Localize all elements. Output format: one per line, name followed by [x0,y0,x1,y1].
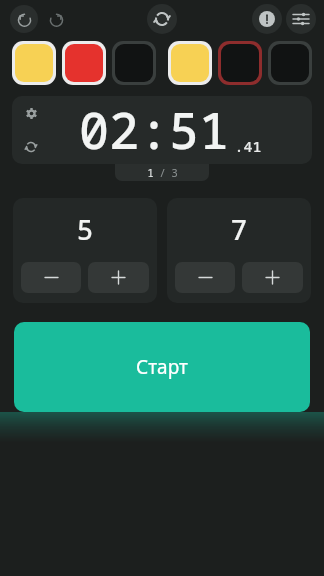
button[interactable]: Colour swatch [65,44,103,82]
button[interactable]: Colour swatch [171,44,209,82]
button[interactable]: 7 [167,198,311,303]
button[interactable]: Redo [42,5,70,33]
button[interactable]: Colour swatch [271,44,309,82]
button[interactable]: Timer settings [12,96,312,164]
button[interactable]: Info [252,4,282,34]
staticText: 1 [147,165,154,180]
button[interactable]: Colour swatch [15,44,53,82]
staticText: / [159,165,166,180]
button[interactable]: Increase [242,262,303,293]
button[interactable]: Старт [14,322,310,412]
button[interactable]: Colour swatch [221,44,259,82]
button[interactable]: Reset timer [20,136,42,158]
staticText: 7 [231,211,247,248]
button[interactable]: Colour swatch [115,44,153,82]
button[interactable]: 5 [13,198,157,303]
staticText: 02:51 [79,96,229,164]
button[interactable]: 1 [115,164,209,181]
button[interactable]: Decrease [175,262,235,293]
button[interactable]: Decrease [21,262,81,293]
staticText: Старт [136,354,188,380]
button[interactable]: Refresh [147,4,177,34]
staticText: 5 [77,211,93,248]
button[interactable]: Increase [88,262,149,293]
staticText: .41 [234,136,262,156]
button[interactable]: Settings [286,4,316,34]
button[interactable]: Timer settings [20,102,42,124]
staticText: 3 [171,165,178,180]
button[interactable]: Undo [10,5,38,33]
